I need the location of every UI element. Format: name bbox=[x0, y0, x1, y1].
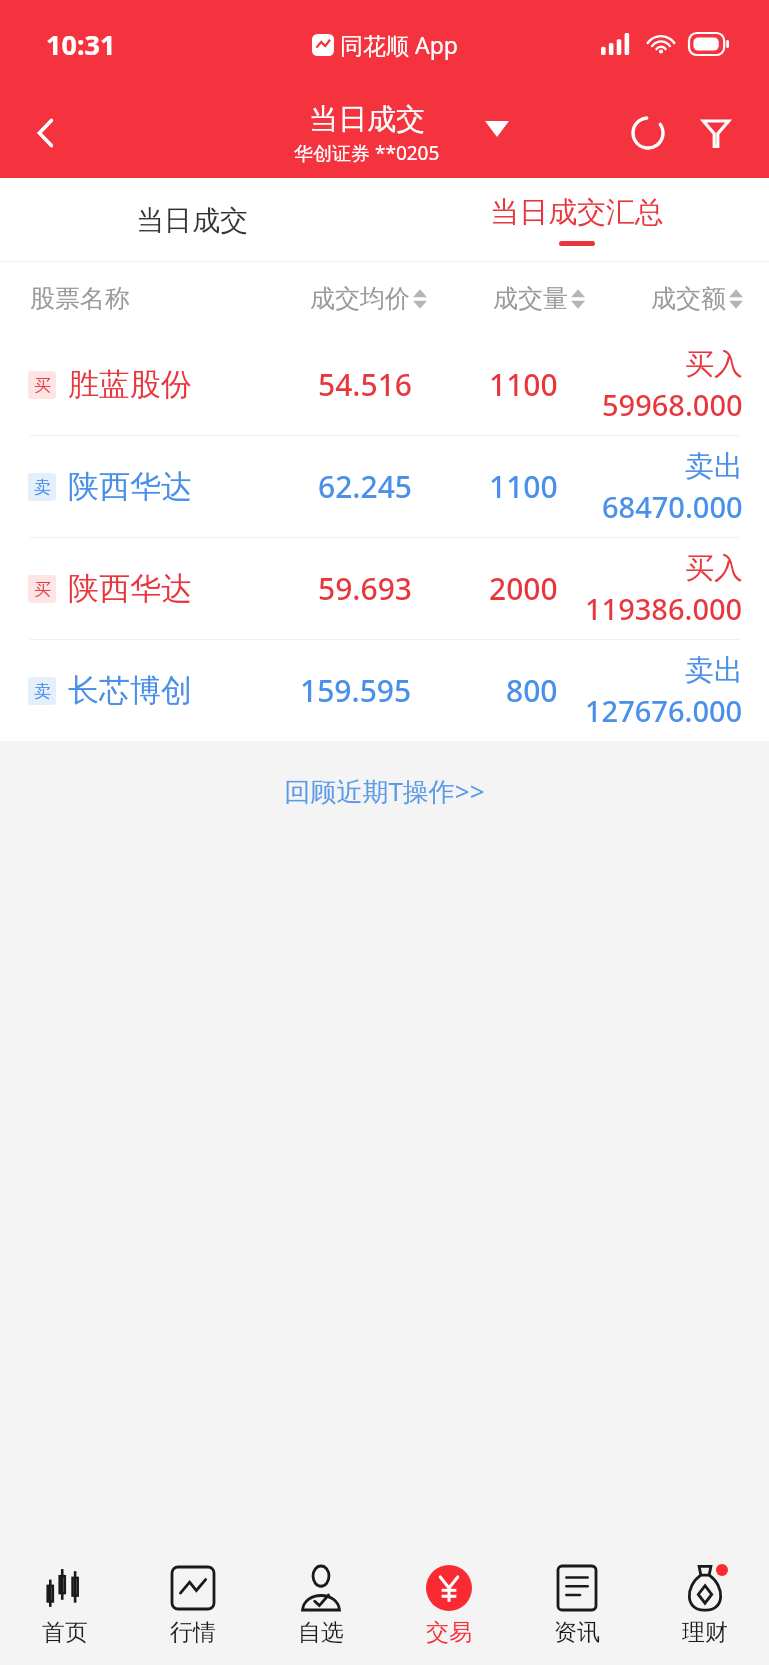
button[interactable]: 交易 bbox=[385, 1547, 513, 1665]
staticText: 买 bbox=[34, 375, 51, 396]
staticText: 成交均价 bbox=[310, 283, 410, 314]
button[interactable]: Filter bbox=[685, 102, 747, 164]
button[interactable]: 当日成交 bbox=[0, 178, 384, 262]
staticText: 59.693 bbox=[318, 568, 412, 609]
button[interactable]: 卖 bbox=[0, 436, 769, 537]
staticText: 当日成交汇总 bbox=[490, 194, 664, 231]
staticText: 卖 bbox=[34, 681, 51, 702]
staticText: 买入 bbox=[685, 346, 743, 383]
staticText: 首页 bbox=[42, 1618, 88, 1647]
button[interactable]: 卖 bbox=[0, 640, 769, 741]
staticText: 119386.000 bbox=[585, 589, 743, 628]
staticText: 62.245 bbox=[318, 466, 412, 507]
button[interactable]: 回顾近期T操作>> bbox=[264, 765, 505, 817]
staticText: 54.516 bbox=[318, 364, 412, 405]
button[interactable]: 首页 bbox=[0, 1547, 129, 1665]
staticText: 1100 bbox=[489, 466, 558, 507]
button[interactable]: Refresh bbox=[617, 102, 679, 164]
staticText: 卖 bbox=[34, 477, 51, 498]
staticText: 卖出 bbox=[685, 448, 743, 485]
staticText: 成交额 bbox=[651, 283, 726, 314]
staticText: 159.595 bbox=[300, 670, 412, 711]
button[interactable]: 自选 bbox=[257, 1547, 385, 1665]
button[interactable]: 理财 bbox=[641, 1547, 769, 1665]
staticText: 陕西华达 bbox=[68, 467, 192, 506]
staticText: 行情 bbox=[170, 1618, 216, 1647]
staticText: 卖出 bbox=[685, 652, 743, 689]
staticText: 同花顺 App bbox=[340, 29, 458, 60]
staticText: 胜蓝股份 bbox=[68, 365, 192, 404]
staticText: 交易 bbox=[426, 1618, 472, 1647]
staticText: 理财 bbox=[682, 1618, 728, 1647]
staticText: 10:31 bbox=[46, 26, 116, 63]
staticText: 华创证券 **0205 bbox=[294, 140, 440, 166]
staticText: 长芯博创 bbox=[68, 671, 192, 710]
staticText: 买 bbox=[34, 579, 51, 600]
staticText: 当日成交 bbox=[309, 101, 425, 138]
button[interactable]: 资讯 bbox=[513, 1547, 641, 1665]
staticText: 59968.000 bbox=[602, 385, 743, 424]
staticText: 1100 bbox=[489, 364, 558, 405]
button[interactable]: 买 bbox=[0, 334, 769, 435]
staticText: 127676.000 bbox=[585, 691, 743, 730]
button[interactable]: Select account bbox=[475, 107, 519, 151]
staticText: 2000 bbox=[489, 568, 558, 609]
button[interactable]: 买 bbox=[0, 538, 769, 639]
staticText: 68470.000 bbox=[602, 487, 743, 526]
staticText: 自选 bbox=[298, 1618, 344, 1647]
staticText: 资讯 bbox=[554, 1618, 600, 1647]
button[interactable]: 行情 bbox=[129, 1547, 257, 1665]
button[interactable]: Back bbox=[8, 95, 84, 171]
staticText: 买入 bbox=[685, 550, 743, 587]
staticText: 800 bbox=[506, 670, 558, 711]
staticText: 股票名称 bbox=[30, 283, 245, 314]
button[interactable]: 当日成交汇总 bbox=[384, 178, 769, 262]
staticText: 回顾近期T操作>> bbox=[284, 773, 485, 809]
staticText: 成交量 bbox=[493, 283, 568, 314]
staticText: 当日成交 bbox=[136, 203, 248, 238]
staticText: 陕西华达 bbox=[68, 569, 192, 608]
